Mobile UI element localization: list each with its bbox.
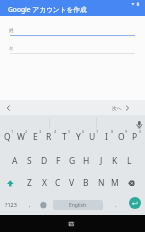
staticText: C [55, 177, 61, 189]
button[interactable]: V [65, 173, 79, 193]
staticText: R [46, 131, 52, 143]
staticText: A [12, 155, 18, 167]
staticText: 姓 [9, 28, 14, 34]
staticText: M [111, 177, 119, 189]
button[interactable]: J [94, 151, 108, 171]
button[interactable]: H [79, 151, 93, 171]
staticText: G [69, 155, 76, 167]
button[interactable]: S [22, 151, 36, 171]
button[interactable] [124, 173, 142, 193]
staticText: N [98, 177, 105, 189]
staticText: 0 [139, 129, 142, 134]
button[interactable]: Y [71, 127, 85, 147]
staticText: , [29, 201, 31, 209]
staticText: O [118, 131, 125, 143]
staticText: 3 [39, 129, 42, 134]
staticText: 2 [25, 129, 28, 134]
staticText: Q [4, 131, 11, 143]
button[interactable]: , [24, 197, 36, 213]
button[interactable] [104, 100, 145, 115]
button[interactable] [2, 173, 20, 193]
staticText: English [69, 202, 87, 209]
button[interactable]: ?123 [1, 196, 21, 213]
button[interactable]: G [65, 151, 79, 171]
button[interactable]: I [99, 127, 113, 147]
button[interactable]: 名 [9, 45, 79, 52]
button[interactable]: W [14, 127, 28, 147]
staticText: 9 [125, 129, 128, 134]
button[interactable]: . [110, 197, 122, 213]
button[interactable]: Z [22, 173, 36, 193]
staticText: 4 [54, 129, 57, 134]
staticText: P [132, 131, 138, 143]
button[interactable]: X [37, 173, 51, 193]
button[interactable] [129, 197, 141, 209]
button[interactable]: K [108, 151, 122, 171]
staticText: K [112, 155, 118, 167]
button[interactable]: N [94, 173, 108, 193]
button[interactable]: P [128, 127, 142, 147]
button[interactable]: A [8, 151, 22, 171]
staticText: V [69, 177, 75, 189]
button[interactable]: 姓 [9, 27, 79, 34]
button[interactable]: E [28, 127, 42, 147]
button[interactable]: T [57, 127, 71, 147]
staticText: 名 [9, 46, 14, 52]
button[interactable]: M [108, 173, 122, 193]
staticText: F [56, 155, 61, 167]
staticText: 1 [11, 129, 14, 134]
staticText: Y [76, 131, 81, 143]
button[interactable]: U [85, 127, 99, 147]
staticText: 5 [68, 129, 71, 134]
button[interactable]: English [53, 200, 103, 210]
staticText: B [83, 177, 89, 189]
button[interactable] [65, 219, 78, 230]
staticText: 次へ [112, 105, 122, 111]
button[interactable]: Q [0, 127, 14, 147]
button[interactable]: R [42, 127, 56, 147]
button[interactable]: B [79, 173, 93, 193]
staticText: Z [27, 177, 32, 189]
staticText: . [115, 201, 117, 209]
button[interactable] [132, 117, 145, 130]
staticText: 7 [96, 129, 99, 134]
button[interactable]: L [122, 151, 136, 171]
staticText: L [127, 155, 132, 167]
staticText: J [100, 155, 103, 167]
staticText: W [17, 131, 25, 143]
staticText: T [62, 131, 67, 143]
button[interactable]: F [51, 151, 65, 171]
staticText: 6 [82, 129, 85, 134]
staticText: X [42, 177, 47, 189]
staticText: E [33, 131, 38, 143]
button[interactable]: C [51, 173, 65, 193]
staticText: H [83, 155, 90, 167]
staticText: U [89, 131, 96, 143]
staticText: I [105, 131, 108, 143]
staticText: ?123 [5, 201, 17, 208]
button[interactable] [0, 100, 22, 115]
staticText: D [41, 155, 48, 167]
button[interactable]: O [114, 127, 128, 147]
staticText: Google アカウントを作成 [8, 5, 87, 14]
button[interactable]: D [37, 151, 51, 171]
staticText: 8 [111, 129, 114, 134]
staticText: S [27, 155, 32, 167]
button[interactable] [37, 196, 50, 213]
